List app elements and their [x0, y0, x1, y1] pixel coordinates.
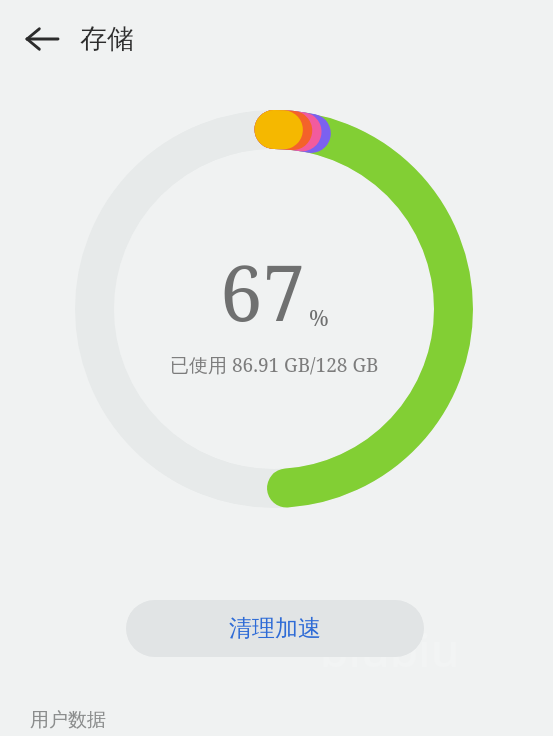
staticText: %: [309, 302, 329, 332]
staticText: 已使用 86.91 GB/128 GB: [170, 352, 379, 378]
staticText: 67: [220, 240, 305, 344]
staticText: 清理加速: [229, 614, 321, 643]
button[interactable]: Back: [16, 13, 68, 65]
staticText: 用户数据: [30, 708, 106, 732]
button[interactable]: 清理加速: [126, 600, 424, 657]
staticText: 存储: [80, 22, 134, 56]
staticText: biubiu: [320, 618, 460, 681]
